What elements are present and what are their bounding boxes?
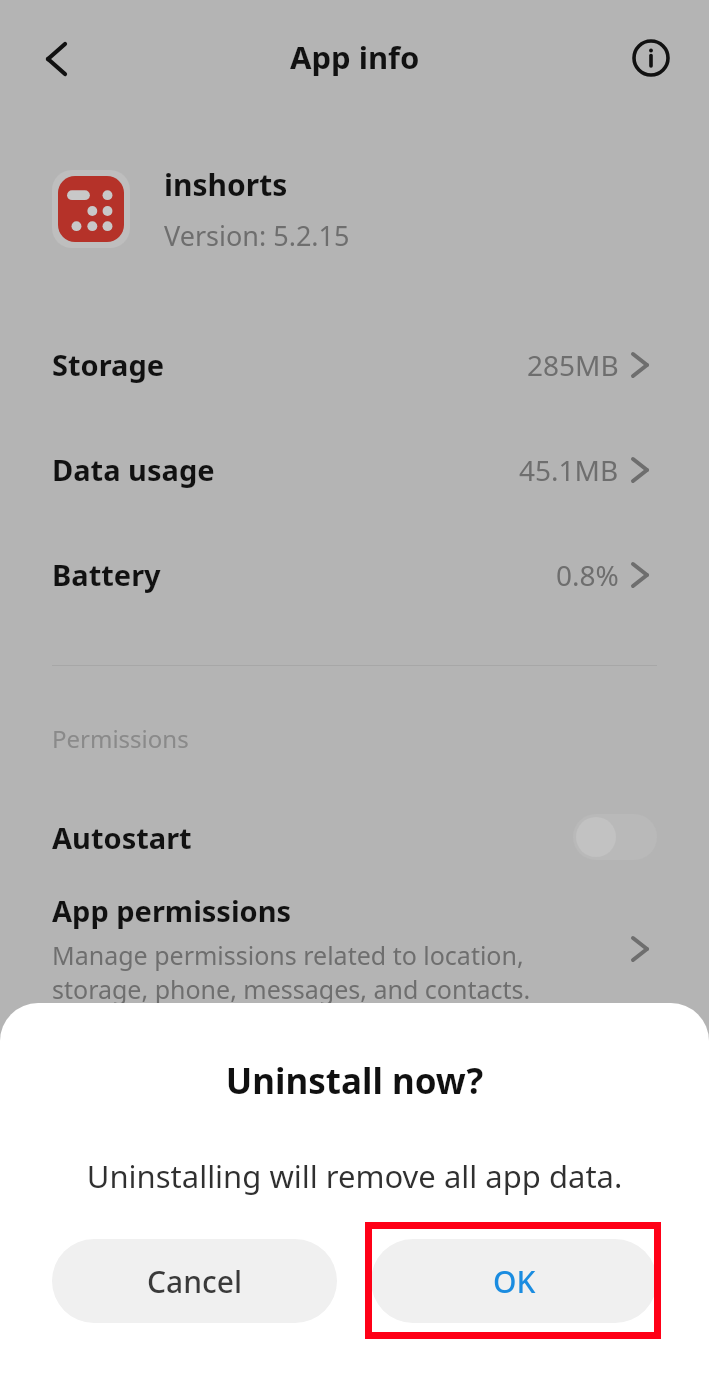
staticText: App info bbox=[290, 36, 420, 78]
staticText: Uninstalling will remove all app data. bbox=[0, 1155, 709, 1197]
staticText: Permissions bbox=[52, 722, 189, 755]
button[interactable]: Battery bbox=[0, 522, 709, 627]
staticText: Autostart bbox=[52, 818, 192, 857]
button[interactable]: Cancel bbox=[52, 1239, 337, 1323]
button[interactable]: App permissions bbox=[0, 891, 709, 1006]
staticText: Version: 5.2.15 bbox=[164, 217, 350, 254]
staticText: Storage bbox=[52, 345, 165, 384]
button[interactable]: Back bbox=[24, 28, 86, 90]
button[interactable]: OK bbox=[371, 1239, 657, 1323]
button[interactable]: Storage bbox=[0, 312, 709, 417]
staticText: OK bbox=[493, 1261, 536, 1302]
staticText: inshorts bbox=[164, 164, 288, 205]
staticText: 45.1MB bbox=[519, 451, 619, 489]
button[interactable]: Autostart bbox=[0, 801, 709, 873]
staticText: Data usage bbox=[52, 450, 215, 489]
staticText: 0.8% bbox=[556, 556, 619, 594]
staticText: Uninstall now? bbox=[0, 1057, 709, 1105]
staticText: 285MB bbox=[527, 346, 619, 384]
button[interactable]: Data usage bbox=[0, 417, 709, 522]
staticText: Manage permissions related to location, … bbox=[52, 938, 615, 1006]
staticText: Battery bbox=[52, 555, 161, 594]
staticText: Cancel bbox=[147, 1261, 243, 1302]
button[interactable]: More information bbox=[620, 27, 682, 89]
staticText: App permissions bbox=[52, 891, 292, 930]
